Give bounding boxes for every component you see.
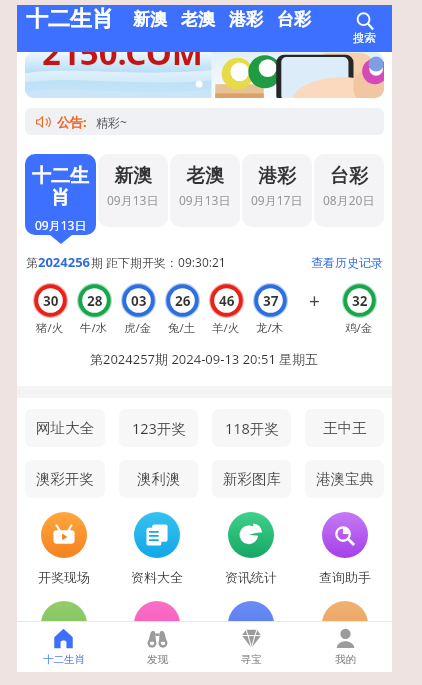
button[interactable]: 十二生肖: [25, 154, 96, 235]
staticText: 十二生肖: [28, 164, 93, 210]
button[interactable]: 十二生肖: [26, 5, 114, 33]
staticText: 澳利澳: [137, 470, 181, 488]
staticText: 公告:: [57, 113, 87, 131]
staticText: 澳彩开奖: [36, 470, 94, 488]
button[interactable]: 查看历史记录: [311, 255, 383, 270]
button[interactable]: 澳利澳: [119, 460, 198, 498]
button[interactable]: 网址大全: [25, 409, 105, 447]
staticText: 资料大全: [131, 569, 183, 585]
button[interactable]: 寻宝: [204, 622, 298, 672]
staticText: 羊/火: [212, 320, 240, 336]
button[interactable]: 澳彩开奖: [25, 460, 105, 498]
staticText: 26: [175, 292, 191, 310]
button[interactable]: 台彩: [314, 154, 384, 227]
staticText: 09月13日: [107, 192, 159, 208]
staticText: 王中王: [323, 419, 367, 437]
button[interactable]: 我的: [298, 622, 392, 672]
button[interactable]: [17, 601, 110, 658]
button[interactable]: 资料大全: [110, 512, 204, 585]
button[interactable]: 118开奖: [212, 409, 291, 447]
staticText: 新彩图库: [223, 470, 281, 488]
button[interactable]: 开奖现场: [17, 512, 110, 585]
staticText: 37: [263, 292, 279, 310]
staticText: 港澳宝典: [316, 470, 374, 488]
staticText: 开奖现场: [38, 569, 90, 585]
button[interactable]: 港彩: [222, 9, 270, 30]
staticText: 发现: [147, 653, 168, 666]
staticText: 第2024257期 2024-09-13 20:51 星期五: [90, 350, 319, 368]
staticText: 第: [26, 255, 38, 270]
staticText: 查询助手: [319, 569, 371, 585]
staticText: 新澳: [114, 164, 152, 188]
button[interactable]: [110, 601, 204, 658]
staticText: 兔/土: [168, 320, 196, 336]
button[interactable]: 新澳: [126, 9, 174, 30]
staticText: 03: [131, 292, 147, 310]
staticText: 港彩: [258, 164, 296, 188]
button[interactable]: 港彩: [242, 154, 312, 227]
staticText: 期 距下期开奖：09:30:21: [91, 254, 226, 270]
button[interactable]: [204, 601, 298, 658]
staticText: 28: [87, 292, 103, 310]
button[interactable]: 资讯统计: [204, 512, 298, 585]
button[interactable]: 老澳: [174, 9, 222, 30]
staticText: 2024256: [38, 253, 91, 271]
staticText: 123开奖: [132, 418, 186, 438]
button[interactable]: 发现: [110, 622, 204, 672]
button[interactable]: 123开奖: [119, 409, 198, 447]
staticText: 46: [219, 292, 235, 310]
staticText: 龙/木: [256, 320, 284, 336]
button[interactable]: 公告:: [25, 108, 384, 135]
staticText: 精彩~: [96, 114, 127, 130]
staticText: 08月20日: [323, 192, 375, 208]
staticText: 09月13日: [179, 192, 231, 208]
staticText: 32: [352, 292, 368, 310]
button[interactable]: 港澳宝典: [305, 460, 384, 498]
button[interactable]: 王中王: [305, 409, 384, 447]
staticText: 我的: [335, 653, 356, 666]
button[interactable]: [298, 601, 392, 658]
staticText: +: [309, 288, 320, 314]
staticText: 牛/水: [80, 320, 108, 336]
staticText: 2150.COM: [42, 52, 203, 75]
staticText: 09月17日: [251, 192, 303, 208]
button[interactable]: 搜索: [336, 5, 392, 52]
button[interactable]: 十二生肖: [17, 622, 110, 672]
button[interactable]: 新彩图库: [212, 460, 291, 498]
button[interactable]: 台彩: [270, 9, 318, 30]
button[interactable]: 新澳: [98, 154, 168, 227]
staticText: 老澳: [186, 164, 224, 188]
button[interactable]: 横幅广告: [25, 52, 384, 98]
staticText: 寻宝: [241, 653, 262, 666]
button[interactable]: 老澳: [170, 154, 240, 227]
staticText: 鸡/金: [345, 320, 373, 336]
button[interactable]: 查询助手: [298, 512, 392, 585]
staticText: 118开奖: [225, 418, 279, 438]
staticText: 台彩: [330, 164, 368, 188]
staticText: 搜索: [353, 31, 376, 45]
staticText: 网址大全: [36, 419, 94, 437]
staticText: 09月13日: [35, 217, 87, 233]
staticText: 十二生肖: [43, 653, 85, 666]
staticText: 猪/火: [36, 320, 64, 336]
staticText: 资讯统计: [225, 569, 277, 585]
staticText: 虎/金: [124, 320, 152, 336]
staticText: 30: [43, 292, 59, 310]
